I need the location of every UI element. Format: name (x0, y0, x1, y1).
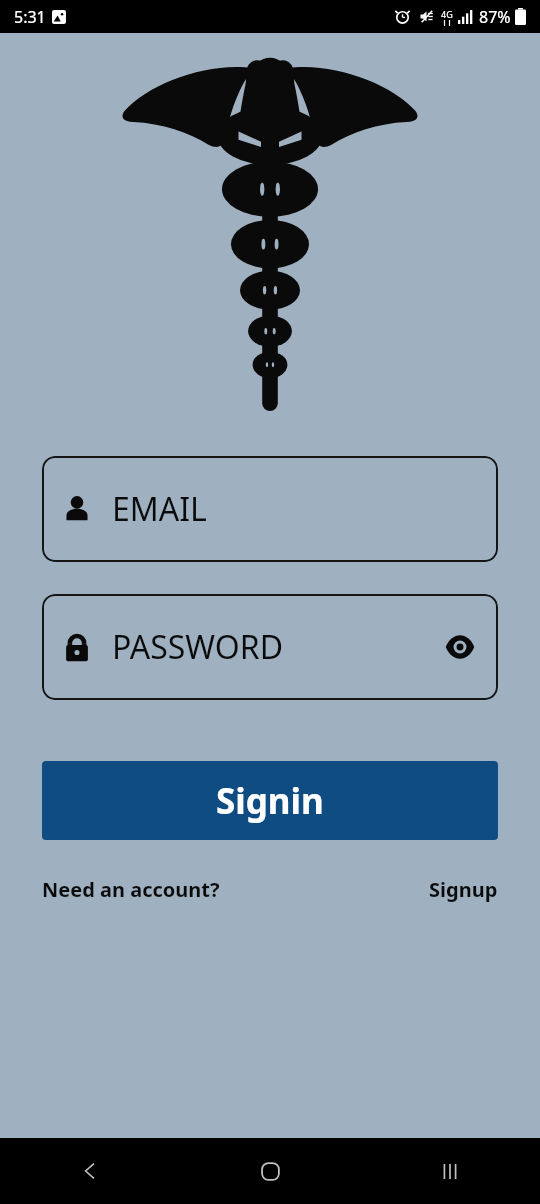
staticText: 5:31 (14, 6, 46, 28)
staticText: EMAIL (112, 487, 207, 531)
button[interactable]: Need an account? (42, 876, 220, 903)
button[interactable]: Signin (42, 761, 498, 840)
button[interactable]: Show password (436, 623, 484, 671)
staticText: Signup (429, 876, 498, 903)
button[interactable]: Recent apps (360, 1138, 540, 1204)
button[interactable]: Email field (42, 456, 498, 562)
staticText: 4G (441, 8, 453, 20)
staticText: 87% (479, 6, 511, 28)
staticText: Signin (216, 777, 324, 825)
button[interactable]: Back (0, 1138, 180, 1204)
button[interactable]: Password field (42, 594, 498, 700)
staticText: Need an account? (42, 876, 220, 903)
staticText: PASSWORD (112, 625, 284, 669)
button[interactable]: Home (180, 1138, 360, 1204)
button[interactable]: Signup (429, 876, 498, 903)
